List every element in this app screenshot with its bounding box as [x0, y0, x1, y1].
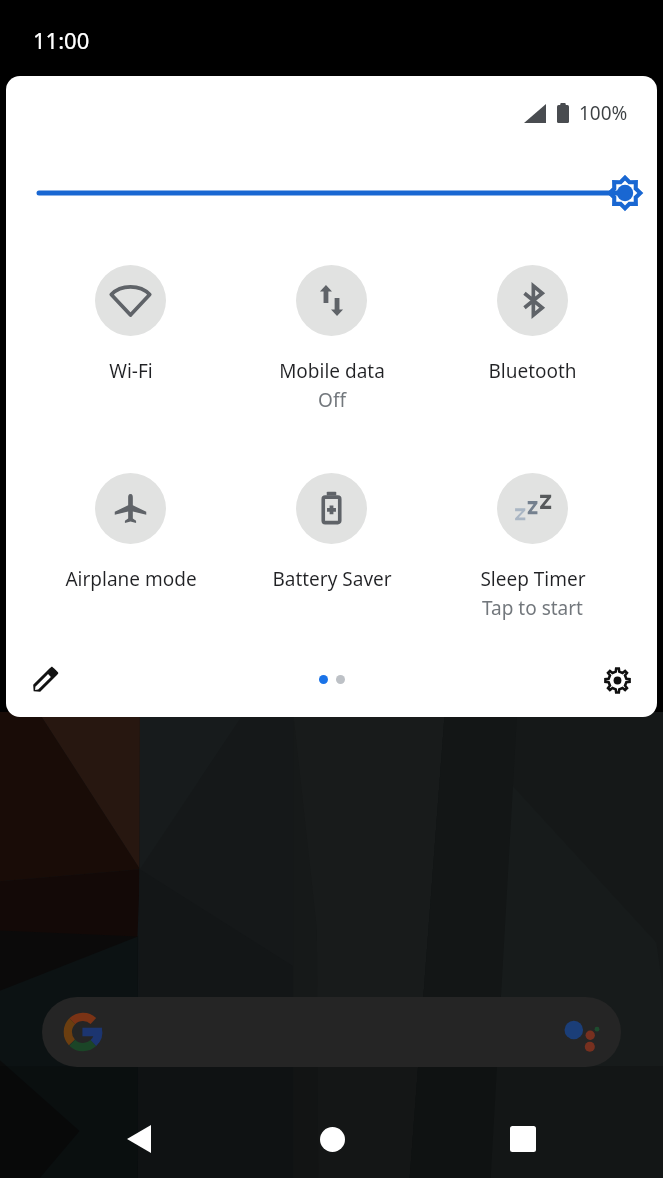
staticText: Tap to start [482, 595, 583, 621]
staticText: Off [318, 387, 346, 413]
button[interactable]: Battery Saver [231, 473, 432, 592]
button[interactable]: Recent apps [493, 1109, 553, 1169]
button[interactable]: Settings [590, 652, 644, 706]
button[interactable]: Sleep Timer [432, 473, 633, 621]
staticText: 11:00 [33, 25, 90, 55]
staticText: Bluetooth [488, 358, 577, 384]
button[interactable]: Airplane mode [30, 473, 231, 592]
staticText: Mobile data [279, 358, 385, 384]
staticText: Battery Saver [272, 566, 392, 592]
button[interactable]: Home [302, 1109, 362, 1169]
staticText: 100% [579, 100, 628, 126]
button[interactable]: Search [42, 997, 621, 1067]
staticText: Airplane mode [65, 566, 197, 592]
staticText: Wi-Fi [109, 358, 153, 384]
staticText: Sleep Timer [480, 566, 586, 592]
button[interactable]: Back [109, 1109, 169, 1169]
button[interactable]: Wi-Fi [30, 265, 231, 384]
button[interactable]: Bluetooth [432, 265, 633, 384]
button[interactable]: Edit [17, 652, 71, 706]
button[interactable]: Mobile data [231, 265, 432, 413]
